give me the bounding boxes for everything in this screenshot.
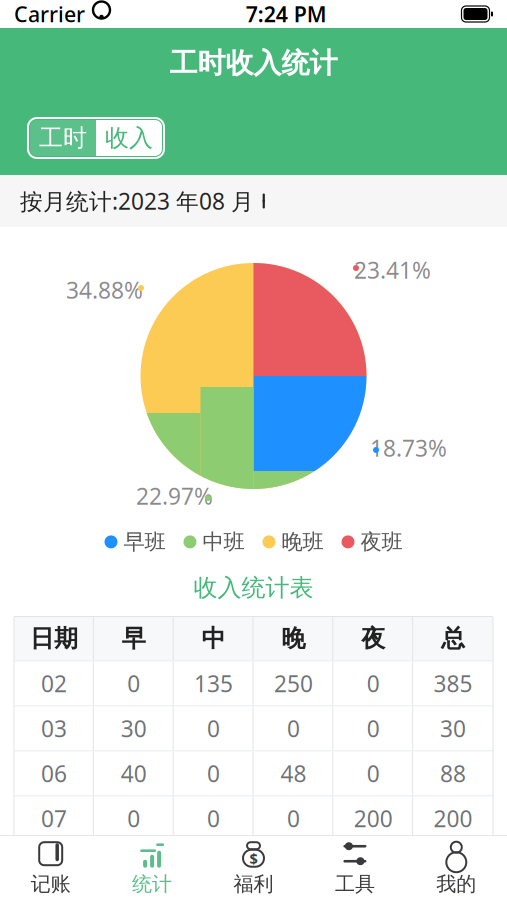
staticText: 40 — [121, 758, 147, 788]
staticText: 0 — [207, 758, 220, 788]
staticText: 福利 — [233, 872, 273, 896]
button[interactable]: 工时 — [30, 120, 96, 156]
staticText: 18.73% — [370, 433, 447, 463]
staticText: 0 — [367, 758, 380, 788]
staticText: 0 — [287, 713, 300, 743]
staticText: 收入统计表 — [193, 573, 313, 602]
staticText: 日期 — [30, 624, 78, 653]
staticText: 250 — [274, 668, 313, 698]
staticText: 07 — [41, 803, 67, 833]
staticText: 中 — [202, 624, 226, 653]
button[interactable]: $ — [203, 836, 304, 900]
staticText: 工具 — [335, 872, 375, 896]
staticText: 夜 — [361, 624, 385, 653]
staticText: 晚班 — [281, 529, 323, 555]
button[interactable]: 按月统计:2023 年08 月 — [0, 175, 507, 227]
button[interactable]: 我的 — [406, 836, 507, 900]
staticText: 135 — [194, 668, 233, 698]
staticText: 03 — [41, 713, 67, 743]
staticText: 早班 — [123, 529, 165, 555]
staticText: 工时收入统计 — [169, 46, 337, 80]
button[interactable]: 记账 — [0, 836, 101, 900]
staticText: 200 — [354, 803, 393, 833]
staticText: 22.97% — [136, 481, 213, 511]
staticText: 385 — [433, 668, 472, 698]
staticText: 0 — [207, 803, 220, 833]
staticText: 工时 — [39, 123, 87, 153]
staticText: 晚 — [281, 624, 305, 653]
staticText: 23.41% — [354, 255, 431, 285]
staticText: 0 — [127, 803, 140, 833]
staticText: Carrier — [14, 0, 85, 28]
staticText: 200 — [433, 803, 472, 833]
staticText: 按月统计:2023 年08 月 — [20, 186, 254, 216]
button[interactable]: 收入 — [96, 120, 162, 156]
staticText: 我的 — [436, 872, 476, 896]
staticText: 06 — [41, 758, 67, 788]
staticText: 夜班 — [360, 529, 402, 555]
staticText: 88 — [440, 758, 466, 788]
staticText: 0 — [207, 713, 220, 743]
staticText: 0 — [367, 668, 380, 698]
staticText: $ — [249, 848, 257, 868]
staticText: 0 — [367, 713, 380, 743]
staticText: 7:24 PM — [246, 0, 327, 28]
staticText: 02 — [41, 668, 67, 698]
staticText: 总 — [441, 624, 465, 653]
staticText: 0 — [287, 803, 300, 833]
button[interactable]: 工具 — [304, 836, 406, 900]
staticText: 48 — [280, 758, 306, 788]
staticText: 30 — [440, 713, 466, 743]
staticText: 统计 — [132, 872, 172, 896]
staticText: 中班 — [202, 529, 244, 555]
staticText: 记账 — [31, 872, 71, 896]
staticText: 30 — [121, 713, 147, 743]
button[interactable]: 统计 — [101, 836, 203, 900]
staticText: 0 — [127, 668, 140, 698]
staticText: 34.88% — [66, 275, 143, 305]
staticText: 早 — [122, 624, 146, 653]
staticText: 收入 — [105, 123, 153, 153]
